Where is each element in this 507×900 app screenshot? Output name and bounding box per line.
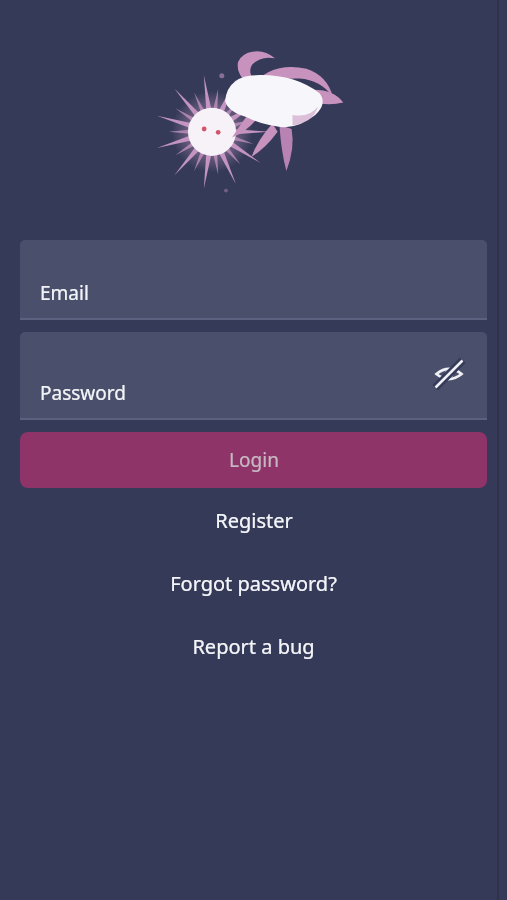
staticText: Email xyxy=(40,280,89,306)
button[interactable]: Show password xyxy=(425,350,473,398)
staticText: Forgot password? xyxy=(170,570,337,597)
staticText: Password xyxy=(40,380,126,406)
button[interactable]: Register xyxy=(0,498,507,543)
staticText: Login xyxy=(229,447,279,473)
staticText: Report a bug xyxy=(192,633,315,660)
button[interactable]: Password xyxy=(20,332,487,420)
button[interactable]: Login xyxy=(20,432,487,488)
staticText: Register xyxy=(215,507,293,534)
button[interactable]: Email xyxy=(20,240,487,320)
button[interactable]: Forgot password? xyxy=(0,561,507,606)
button[interactable]: Report a bug xyxy=(0,624,507,669)
